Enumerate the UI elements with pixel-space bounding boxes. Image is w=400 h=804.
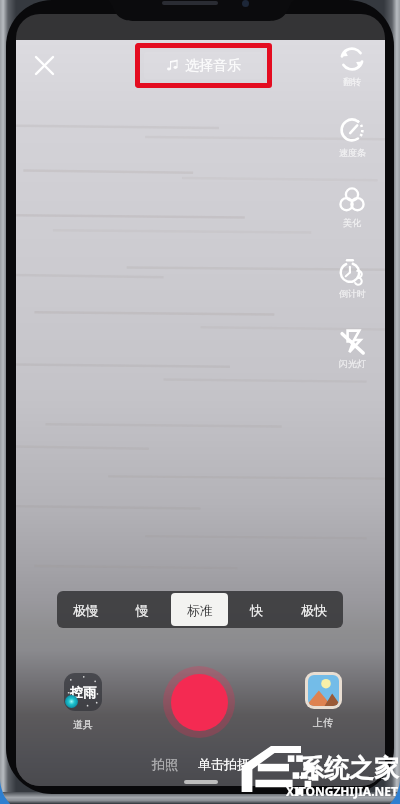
staticText: 美化 <box>343 217 361 228</box>
button[interactable]: Record <box>163 666 235 738</box>
staticText: 速度条 <box>339 147 366 158</box>
button[interactable]: 闪光灯 <box>324 328 380 369</box>
button[interactable]: 拍照 <box>145 753 185 775</box>
button[interactable]: 慢 <box>114 591 171 628</box>
button[interactable]: 标准 <box>171 593 228 626</box>
staticText: 快 <box>250 602 263 618</box>
staticText: 单击拍摄 <box>198 756 250 772</box>
staticText: 极快 <box>301 602 327 618</box>
button[interactable]: 快 <box>228 591 285 628</box>
staticText: 道具 <box>73 718 93 731</box>
staticText: 翻转 <box>343 76 361 87</box>
staticText: 拍照 <box>152 756 178 772</box>
button[interactable]: 倒计时 <box>324 258 380 299</box>
button[interactable]: 美化 <box>324 187 380 228</box>
button[interactable]: 极慢 <box>57 591 114 628</box>
button[interactable]: 单击拍摄 <box>191 753 257 775</box>
staticText: XITONGZHIJIA.NET <box>286 783 398 799</box>
staticText: 上传 <box>313 716 333 729</box>
staticText: 极慢 <box>73 602 99 618</box>
button[interactable]: 翻转 <box>324 46 380 87</box>
staticText: 选择音乐 <box>185 57 241 75</box>
button[interactable]: 选择音乐 <box>144 52 263 79</box>
staticText: 慢 <box>136 602 149 618</box>
button[interactable]: 极快 <box>285 591 342 628</box>
button[interactable]: 上传 <box>299 672 347 729</box>
button[interactable]: 控雨 <box>59 673 107 731</box>
staticText: 控雨 <box>70 684 96 700</box>
staticText: 倒计时 <box>339 288 366 299</box>
staticText: 闪光灯 <box>339 358 366 369</box>
staticText: 系统之家 <box>299 753 399 784</box>
staticText: 标准 <box>187 602 213 618</box>
button[interactable]: Close <box>27 48 61 82</box>
button[interactable]: 速度条 <box>324 117 380 158</box>
